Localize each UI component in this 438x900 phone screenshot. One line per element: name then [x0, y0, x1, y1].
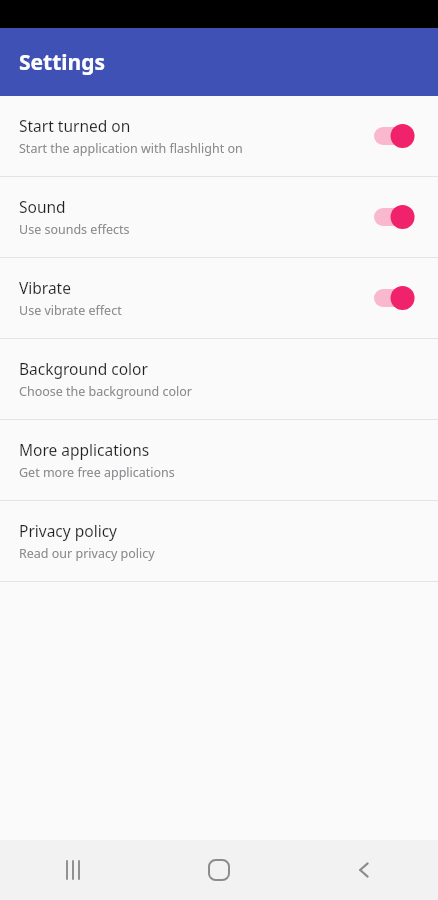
- staticText: Settings: [19, 48, 106, 77]
- button[interactable]: Recent apps: [0, 840, 146, 900]
- staticText: Background color: [19, 358, 148, 379]
- staticText: Read our privacy policy: [19, 545, 155, 562]
- staticText: More applications: [19, 439, 150, 460]
- button[interactable]: Vibrate: [0, 258, 438, 338]
- staticText: Vibrate: [19, 277, 71, 298]
- button[interactable]: Background color: [0, 339, 438, 419]
- button[interactable]: Sound: [0, 177, 438, 257]
- button[interactable]: Toggle: [374, 121, 418, 151]
- button[interactable]: Home: [146, 840, 292, 900]
- staticText: Sound: [19, 196, 66, 217]
- button[interactable]: Privacy policy: [0, 501, 438, 581]
- staticText: Get more free applications: [19, 464, 175, 481]
- button[interactable]: More applications: [0, 420, 438, 500]
- staticText: Choose the background color: [19, 383, 193, 400]
- button[interactable]: Toggle: [374, 202, 418, 232]
- staticText: Start turned on: [19, 115, 131, 136]
- button[interactable]: Start turned on: [0, 96, 438, 176]
- staticText: Privacy policy: [19, 520, 117, 541]
- button[interactable]: Toggle: [374, 283, 418, 313]
- button[interactable]: Back: [292, 840, 438, 900]
- staticText: Use sounds effects: [19, 221, 130, 238]
- staticText: Start the application with flashlight on: [19, 140, 243, 157]
- staticText: Use vibrate effect: [19, 302, 122, 319]
